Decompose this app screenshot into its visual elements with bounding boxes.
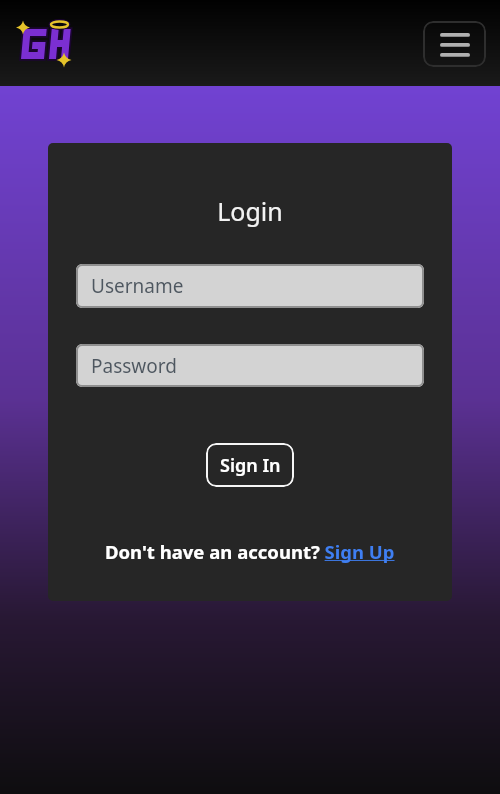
button[interactable]: Password — [76, 344, 424, 387]
staticText: Password — [91, 353, 177, 379]
staticText: Login — [48, 194, 452, 228]
button[interactable]: Sign In — [206, 443, 294, 487]
staticText: Username — [91, 273, 184, 299]
button[interactable]: Don't have an account? Sign Up — [105, 539, 395, 564]
button[interactable] — [15, 20, 75, 72]
button[interactable]: Username — [76, 264, 424, 308]
button[interactable] — [423, 21, 486, 67]
staticText: Sign In — [220, 453, 281, 478]
